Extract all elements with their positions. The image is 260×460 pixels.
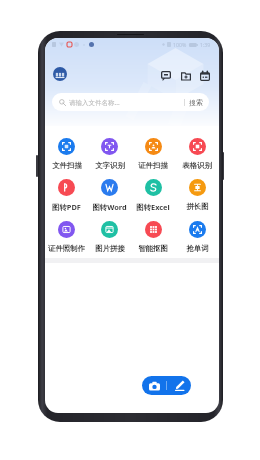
button[interactable]: 图转Excel (131, 179, 175, 212)
button[interactable]: 文件扫描 (45, 138, 88, 170)
staticText: 表格识别 (182, 161, 212, 170)
button[interactable]: Take photo (142, 376, 191, 395)
other: Write note (167, 376, 191, 395)
staticText: 拼长图 (186, 202, 209, 211)
staticText: 文件扫描 (52, 161, 82, 170)
button[interactable]: 抢单词 (175, 221, 219, 253)
button[interactable]: 证件扫描 (131, 138, 175, 170)
staticText: 请输入文件名称... (69, 98, 120, 107)
staticText: 抢单词 (186, 244, 209, 253)
staticText: 图转Excel (136, 202, 170, 212)
other: Take photo (142, 376, 166, 395)
staticText: 图片拼接 (95, 244, 125, 253)
button[interactable]: Calendar (198, 69, 212, 83)
button[interactable]: 表格识别 (175, 138, 219, 170)
button[interactable]: App logo (53, 67, 67, 81)
staticText: 智能抠图 (138, 244, 168, 253)
button[interactable]: 图转PDF (45, 179, 88, 212)
button[interactable]: 拼长图 (175, 179, 219, 211)
staticText: 证件扫描 (138, 161, 168, 170)
staticText: 证件照制作 (48, 244, 85, 253)
button[interactable]: 文字识别 (88, 138, 131, 170)
staticText: 图转Word (92, 202, 127, 212)
staticText: 文字识别 (95, 161, 125, 170)
button[interactable]: 证件照制作 (45, 221, 88, 253)
button[interactable]: 请输入文件名称... (52, 93, 209, 111)
staticText: 100% (173, 41, 187, 48)
button[interactable]: 图转Word (88, 179, 131, 212)
staticText: 图转PDF (52, 202, 81, 212)
button[interactable]: 图片拼接 (88, 221, 131, 253)
staticText: 搜索 (189, 98, 203, 107)
staticText: 1:39 (200, 41, 211, 48)
button[interactable]: Messages (159, 69, 173, 83)
button[interactable]: New folder (179, 69, 193, 83)
button[interactable]: 智能抠图 (131, 221, 175, 253)
